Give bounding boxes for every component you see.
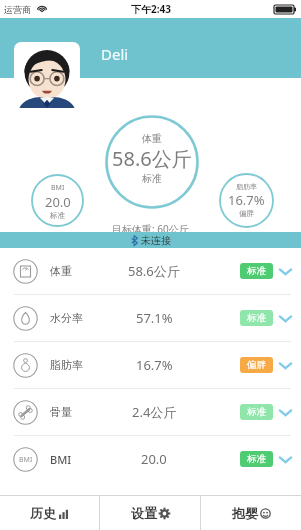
staticText: 标准 <box>142 172 162 185</box>
button[interactable]: 设置 <box>100 496 200 530</box>
button[interactable]: 未连接 <box>0 232 301 248</box>
staticText: 标准 <box>247 265 266 277</box>
staticText: 抱婴 <box>232 505 258 521</box>
staticText: 标准 <box>247 312 266 324</box>
staticText: BMI <box>50 452 72 467</box>
staticText: 58.6公斤 <box>112 145 192 172</box>
button[interactable]: 脂肪率 <box>0 342 301 388</box>
button[interactable]: 体重 <box>0 248 301 294</box>
staticText: 16.7% <box>136 356 173 374</box>
staticText: 16.7% <box>228 191 265 209</box>
staticText: 体重 <box>50 264 72 278</box>
staticText: 脂肪率 <box>50 358 83 372</box>
staticText: 58.6公斤 <box>128 262 180 280</box>
staticText: 体重 <box>142 132 162 145</box>
staticText: BMI <box>19 455 33 465</box>
button[interactable]: BMI <box>0 436 301 482</box>
button[interactable]: 历史 <box>0 496 99 530</box>
button[interactable]: 抱婴 <box>201 496 301 530</box>
staticText: Deli <box>101 44 129 64</box>
button[interactable]: 水分率 <box>0 295 301 341</box>
staticText: BMI <box>51 183 65 193</box>
staticText: 2.4公斤 <box>132 403 177 421</box>
staticText: 未连接 <box>141 234 171 247</box>
staticText: 水分率 <box>50 311 83 325</box>
staticText: 目标体重: 60公斤 <box>112 222 189 236</box>
staticText: 脂肪率 <box>236 182 257 191</box>
button[interactable]: User profile Deli <box>14 42 80 108</box>
button[interactable]: 骨量 <box>0 389 301 435</box>
staticText: 偏胖 <box>247 359 266 371</box>
staticText: 运营商 <box>4 4 31 15</box>
staticText: 20.0 <box>45 193 71 211</box>
staticText: 20.0 <box>141 450 167 468</box>
staticText: 标准 <box>247 406 266 418</box>
staticText: 骨量 <box>50 405 72 419</box>
staticText: 下午2:43 <box>131 2 171 16</box>
staticText: 57.1% <box>136 309 173 327</box>
staticText: 历史 <box>30 505 56 521</box>
staticText: 偏胖 <box>239 209 254 218</box>
staticText: 标准 <box>50 211 65 220</box>
staticText: 设置 <box>131 505 157 521</box>
staticText: 标准 <box>247 453 266 465</box>
